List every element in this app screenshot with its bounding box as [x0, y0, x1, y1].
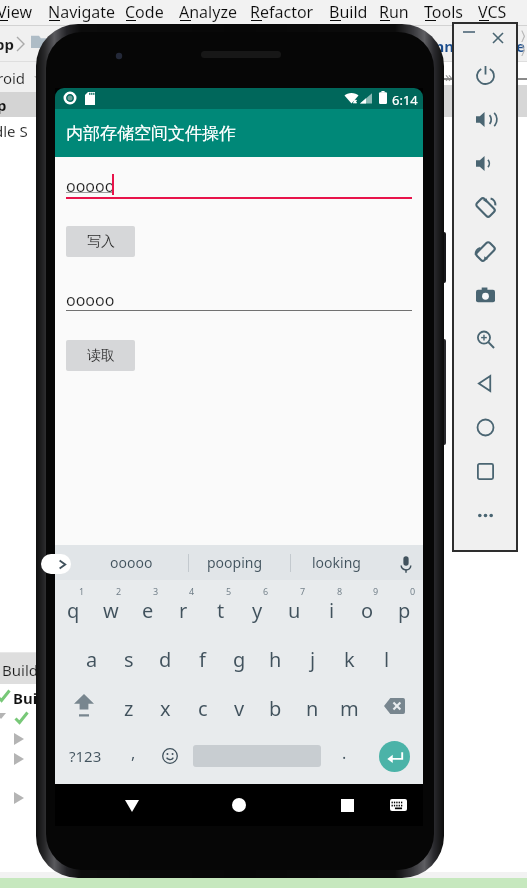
button[interactable]: g [221, 632, 258, 681]
button[interactable]: Volume key [441, 339, 446, 445]
button[interactable]: 9 [349, 583, 386, 632]
button[interactable]: Backspace [367, 681, 422, 730]
staticText: 4 [189, 585, 195, 597]
staticText: p [0, 95, 7, 115]
button[interactable]: 5 [202, 583, 239, 632]
button[interactable]: Zoom [454, 317, 516, 361]
button[interactable]: 写入 [66, 226, 135, 257]
button[interactable]: Build [329, 0, 368, 25]
staticText: 2 [116, 585, 122, 597]
staticText: pooping [207, 553, 263, 572]
button[interactable]: Home [211, 784, 267, 826]
button[interactable]: More [454, 493, 516, 537]
staticText: c [198, 695, 208, 722]
button[interactable]: Rotate right [454, 229, 516, 273]
button[interactable]: Back [454, 361, 516, 405]
staticText: 9 [373, 585, 379, 597]
button[interactable]: , [115, 731, 151, 781]
button[interactable]: 3 [129, 583, 166, 632]
button[interactable]: More suggestions [41, 554, 71, 574]
button[interactable]: Enter [367, 731, 422, 781]
staticText: y [252, 597, 263, 624]
staticText: 6:14 [392, 91, 418, 109]
staticText: a [86, 646, 98, 673]
staticText: Bui [13, 688, 38, 708]
staticText: e [516, 36, 525, 56]
staticText: 〉 [521, 44, 526, 57]
staticText: j [310, 646, 316, 673]
button[interactable]: d [147, 632, 184, 681]
staticText: ?123 [69, 746, 102, 766]
staticText: looking [312, 553, 361, 572]
button[interactable]: pooping [183, 545, 286, 580]
button[interactable]: 8 [313, 583, 350, 632]
button[interactable]: a [73, 632, 110, 681]
staticText: f [199, 646, 206, 673]
button[interactable]: 0 [386, 583, 423, 632]
button[interactable]: j [294, 632, 331, 681]
staticText: 3 [153, 585, 159, 597]
button[interactable]: h [257, 632, 294, 681]
staticText: n [306, 695, 319, 722]
button[interactable]: c [184, 681, 221, 730]
button[interactable]: Switch keyboard [375, 784, 421, 826]
button[interactable]: Back [104, 784, 160, 826]
button[interactable]: f [184, 632, 221, 681]
staticText: g [233, 646, 246, 673]
button[interactable]: 读取 [66, 340, 135, 371]
button[interactable]: x [147, 681, 184, 730]
button[interactable]: Code [125, 0, 164, 25]
button[interactable]: Analyze [179, 0, 237, 25]
button[interactable]: Navigate [48, 0, 116, 25]
staticText: pp [0, 34, 14, 54]
staticText: r [179, 597, 188, 624]
button[interactable]: n [294, 681, 331, 730]
button[interactable]: b [257, 681, 294, 730]
button[interactable]: Screenshot [454, 273, 516, 317]
button[interactable]: s [110, 632, 147, 681]
staticText: w [103, 597, 119, 624]
button[interactable]: z [110, 681, 147, 730]
staticText: 6 [263, 585, 269, 597]
button[interactable]: Refactor [250, 0, 314, 25]
staticText: 1 [79, 585, 85, 597]
button[interactable]: Shift [56, 681, 111, 730]
button[interactable]: Power key [441, 232, 446, 283]
button[interactable]: Space [189, 731, 325, 781]
staticText: i [329, 597, 335, 624]
button[interactable]: View [0, 0, 33, 25]
button[interactable]: Voice input [392, 550, 420, 578]
button[interactable]: 4 [165, 583, 202, 632]
button[interactable]: Rotate left [454, 185, 516, 229]
button[interactable]: Volume up [454, 97, 516, 141]
button[interactable]: 7 [276, 583, 313, 632]
button[interactable]: l [368, 632, 405, 681]
button[interactable]: 6 [239, 583, 276, 632]
button[interactable]: . [325, 731, 363, 781]
button[interactable]: Home [454, 405, 516, 449]
staticText: Refactor [250, 1, 314, 23]
staticText: b [269, 695, 282, 722]
button[interactable]: ?123 [55, 731, 115, 781]
staticText: Navigate [48, 1, 116, 23]
button[interactable]: Power [454, 53, 516, 97]
button[interactable]: v [221, 681, 258, 730]
staticText: z [124, 695, 134, 722]
button[interactable]: Run [379, 0, 409, 25]
staticText: 〉 [521, 30, 526, 43]
button[interactable]: Emoji [151, 731, 189, 781]
button[interactable]: 2 [92, 583, 129, 632]
button[interactable]: Recents [321, 784, 373, 826]
button[interactable]: 1 [55, 583, 92, 632]
button[interactable]: Tools [424, 0, 463, 25]
staticText: d [159, 646, 172, 673]
button[interactable]: VCS [478, 0, 507, 25]
button[interactable]: m [331, 681, 368, 730]
button[interactable]: Overview [454, 449, 516, 493]
button[interactable]: k [331, 632, 368, 681]
staticText: Tools [424, 1, 463, 23]
staticText: inn [430, 36, 454, 56]
button[interactable]: ooooo [80, 545, 183, 580]
button[interactable]: looking [285, 545, 388, 580]
button[interactable]: Volume down [454, 141, 516, 185]
